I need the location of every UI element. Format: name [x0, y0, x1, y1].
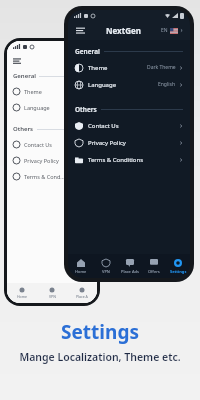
button[interactable]: Place Ads	[118, 254, 142, 278]
button[interactable]: Terms & Cond...	[7, 168, 97, 184]
staticText: English	[158, 81, 176, 88]
staticText: Privacy Policy	[24, 157, 59, 164]
staticText: Privacy Policy	[88, 139, 126, 147]
staticText: Settings	[61, 319, 139, 345]
staticText: Others	[75, 105, 97, 114]
button[interactable]: Terms & Conditions	[68, 151, 190, 168]
staticText: VPN	[102, 269, 110, 274]
button[interactable]: Offers	[142, 254, 166, 278]
staticText: Contact Us	[88, 122, 119, 130]
staticText: General	[13, 72, 36, 80]
button[interactable]: Menu	[75, 25, 86, 36]
staticText: Contact Us	[24, 141, 52, 148]
staticText: Mange Localization, Theme etc.	[19, 350, 181, 364]
staticText: NextGen	[106, 25, 141, 36]
staticText: Dark Theme	[147, 64, 176, 71]
staticText: Theme	[24, 88, 42, 95]
button[interactable]: Language	[68, 76, 190, 93]
staticText: EN	[161, 27, 168, 34]
button[interactable]: Home	[68, 254, 93, 278]
button[interactable]: Privacy Policy	[7, 152, 97, 168]
staticText: Language	[88, 81, 117, 89]
staticText: VPN	[49, 294, 56, 299]
staticText: Theme	[88, 64, 108, 72]
button[interactable]: Language	[7, 99, 97, 115]
button[interactable]: Language EN	[161, 27, 183, 34]
staticText: Settings	[170, 269, 187, 274]
staticText: Home	[75, 269, 87, 274]
staticText: Offers	[148, 269, 160, 274]
staticText: General	[75, 47, 100, 56]
button[interactable]: Contact Us	[68, 117, 190, 134]
staticText: Language	[24, 104, 50, 111]
button[interactable]: Privacy Policy	[68, 134, 190, 151]
button[interactable]: Theme	[7, 83, 97, 99]
button[interactable]: Settings	[166, 254, 190, 278]
button[interactable]: Contact Us	[7, 136, 97, 152]
staticText: Home	[17, 294, 27, 299]
staticText: Place Ads	[121, 269, 139, 274]
staticText: Terms & Conditions	[88, 156, 144, 164]
button[interactable]: Theme	[68, 59, 190, 76]
staticText: Terms & Cond...	[24, 173, 65, 180]
staticText: Others	[13, 125, 34, 133]
staticText: Place A	[76, 294, 88, 299]
button[interactable]: VPN	[93, 254, 118, 278]
